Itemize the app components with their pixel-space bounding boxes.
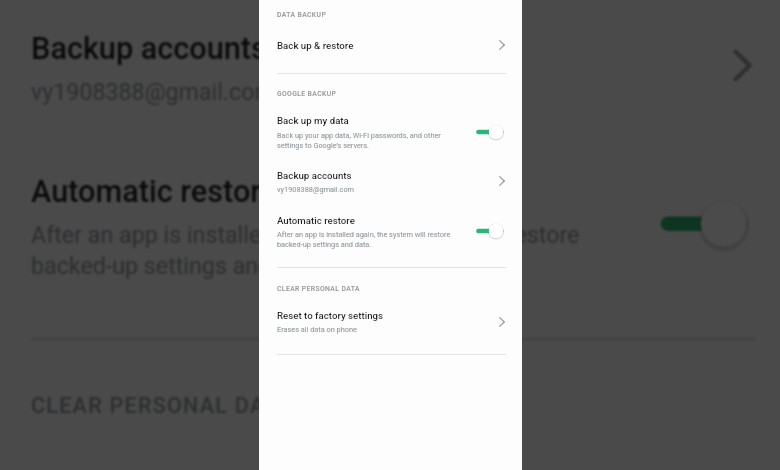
button[interactable]: Reset to factory settings xyxy=(0,448,780,470)
button[interactable]: Backup accounts xyxy=(0,2,780,135)
staticText: settings to Google's servers. xyxy=(277,141,370,150)
button[interactable]: Automatic restore xyxy=(259,207,522,256)
staticText: CLEAR PERSONAL DATA xyxy=(31,394,293,420)
button[interactable]: Automatic restore xyxy=(0,148,780,303)
staticText: After an app is installed again, the sys… xyxy=(277,230,451,239)
button[interactable]: Automatic restore, on xyxy=(654,189,758,258)
staticText: Back up & restore xyxy=(277,40,354,51)
button[interactable]: Automatic restore, on xyxy=(474,220,507,242)
staticText: vy1908388@gmail.com xyxy=(31,78,278,107)
staticText: Automatic restore xyxy=(277,215,355,226)
staticText: backed-up settings and data. xyxy=(277,240,372,249)
staticText: vy1908388@gmail.com xyxy=(277,185,355,194)
staticText: DATA BACKUP xyxy=(277,11,327,19)
button[interactable]: Back up my data xyxy=(259,108,522,157)
button[interactable]: Reset to factory settings xyxy=(259,302,522,344)
staticText: Back up my data xyxy=(277,115,349,126)
staticText: Backup accounts xyxy=(277,170,352,181)
staticText: Erases all data on phone xyxy=(277,325,357,334)
staticText: Back up your app data, Wi-Fi passwords, … xyxy=(277,131,441,140)
staticText: After an app is installed again, the sys… xyxy=(31,220,581,249)
staticText: Automatic restore xyxy=(31,173,278,208)
button[interactable]: Back up & restore xyxy=(259,28,522,63)
staticText: CLEAR PERSONAL DATA xyxy=(277,285,360,293)
staticText: backed-up settings and data. xyxy=(31,252,331,281)
button[interactable]: Back up my data, on xyxy=(474,121,507,143)
staticText: GOOGLE BACKUP xyxy=(277,90,337,98)
button[interactable]: Backup accounts xyxy=(259,161,522,203)
staticText: Backup accounts xyxy=(31,31,268,65)
staticText: Reset to factory settings xyxy=(277,310,384,321)
